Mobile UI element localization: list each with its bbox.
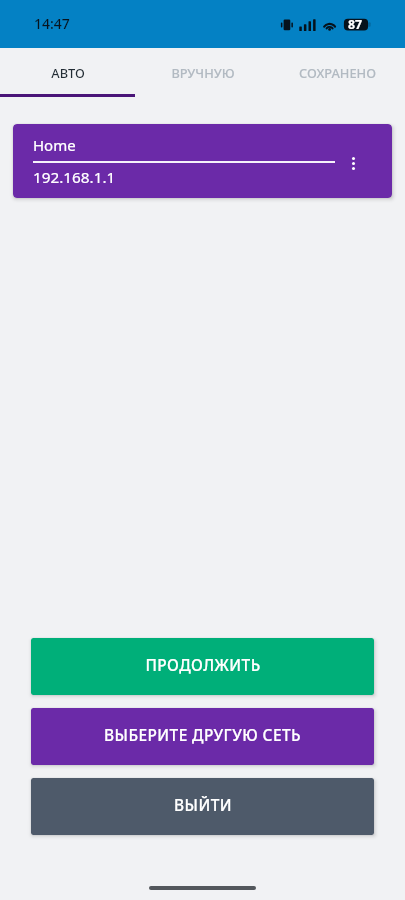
button[interactable]: СОХРАНЕНО bbox=[270, 48, 405, 97]
staticText: АВТО bbox=[51, 64, 85, 81]
button[interactable]: ВРУЧНУЮ bbox=[135, 48, 270, 97]
button[interactable]: ПРОДОЛЖИТЬ bbox=[31, 638, 374, 695]
button[interactable]: ВЫБЕРИТЕ ДРУГУЮ СЕТЬ bbox=[31, 708, 374, 765]
staticText: ВЫБЕРИТЕ ДРУГУЮ СЕТЬ bbox=[104, 725, 301, 746]
staticText: ВЫЙТИ bbox=[174, 795, 232, 816]
staticText: СОХРАНЕНО bbox=[299, 64, 376, 81]
staticText: 14:47 bbox=[34, 14, 70, 33]
button[interactable]: ВЫЙТИ bbox=[31, 778, 374, 835]
staticText: Home bbox=[33, 135, 76, 155]
button[interactable]: More options bbox=[341, 151, 365, 175]
staticText: 192.168.1.1 bbox=[33, 167, 116, 188]
staticText: 87 bbox=[348, 16, 363, 33]
button[interactable]: Home bbox=[13, 124, 392, 198]
staticText: ВРУЧНУЮ bbox=[171, 64, 235, 81]
staticText: ПРОДОЛЖИТЬ bbox=[145, 655, 261, 676]
button[interactable]: АВТО bbox=[0, 48, 135, 97]
